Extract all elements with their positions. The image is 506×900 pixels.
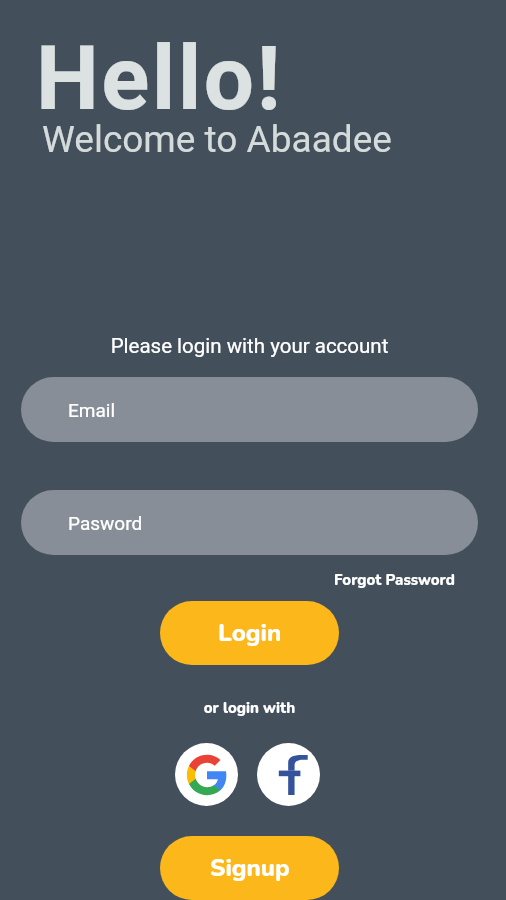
button[interactable]: Login <box>160 601 339 665</box>
button[interactable]: Email <box>21 377 478 442</box>
button[interactable]: Forgot Password <box>328 566 461 594</box>
staticText: or login with <box>0 698 499 718</box>
staticText: Login <box>218 617 282 650</box>
button[interactable]: Pasword <box>21 490 478 555</box>
button[interactable]: Sign in with Google <box>175 743 238 806</box>
staticText: Signup <box>210 852 290 885</box>
staticText: Forgot Password <box>334 570 455 590</box>
staticText: Please login with your account <box>0 334 499 358</box>
button[interactable]: Sign in with Facebook <box>257 743 320 806</box>
staticText: Hello! <box>36 26 284 130</box>
button[interactable]: Signup <box>160 836 339 900</box>
staticText: Pasword <box>68 512 143 534</box>
staticText: Welcome to Abaadee <box>42 118 392 161</box>
staticText: Email <box>68 399 116 421</box>
